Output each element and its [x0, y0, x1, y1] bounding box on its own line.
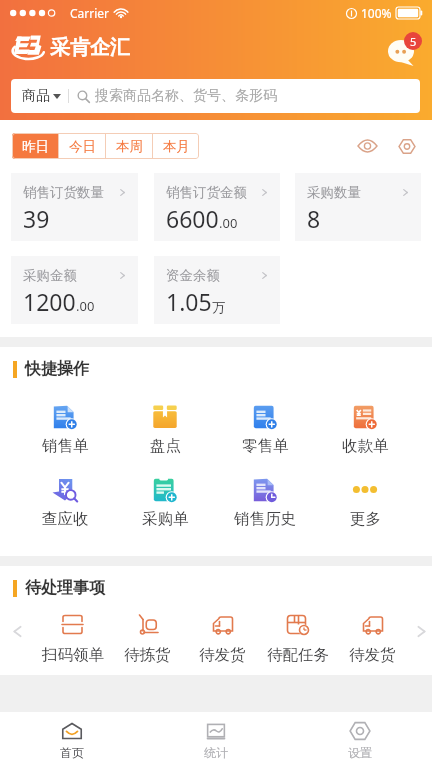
- staticText: 首页: [60, 745, 84, 760]
- button[interactable]: 扫码领单: [35, 612, 110, 665]
- button[interactable]: 采购单: [115, 477, 215, 529]
- button[interactable]: 收款单: [315, 404, 415, 456]
- button[interactable]: 销售订货金额: [154, 173, 280, 241]
- staticText: 统计: [204, 745, 228, 760]
- staticText: 快捷操作: [25, 359, 89, 379]
- staticText: 设置: [348, 745, 372, 760]
- staticText: 扫码领单: [42, 645, 104, 665]
- staticText: 待发货: [349, 645, 396, 665]
- staticText: 盘点: [150, 436, 181, 456]
- staticText: 昨日: [22, 138, 49, 155]
- button[interactable]: 待发货: [335, 612, 410, 665]
- staticText: 搜索商品名称、货号、条形码: [95, 87, 277, 105]
- button[interactable]: 本周: [106, 133, 152, 159]
- staticText: 零售单: [242, 436, 289, 456]
- button[interactable]: 查应收: [15, 477, 115, 529]
- staticText: 万: [212, 299, 225, 315]
- staticText: 采购单: [142, 509, 189, 529]
- staticText: 资金余额: [166, 267, 220, 284]
- staticText: 销售订货数量: [23, 184, 104, 201]
- staticText: 5: [410, 34, 417, 49]
- staticText: 销售单: [42, 436, 89, 456]
- button[interactable]: 商品: [11, 79, 420, 113]
- staticText: .00: [76, 297, 95, 315]
- button[interactable]: 今日: [59, 133, 105, 159]
- button[interactable]: 首页: [0, 712, 144, 768]
- button[interactable]: Messages: [388, 32, 422, 66]
- button[interactable]: 盘点: [115, 404, 215, 456]
- staticText: .00: [219, 214, 238, 232]
- staticText: 今日: [69, 138, 96, 155]
- staticText: 采购金额: [23, 267, 77, 284]
- button[interactable]: 零售单: [215, 404, 315, 456]
- button[interactable]: 待拣货: [110, 612, 185, 665]
- button[interactable]: Previous: [0, 612, 35, 662]
- button[interactable]: 采购金额: [11, 256, 138, 324]
- button[interactable]: 统计: [144, 712, 288, 768]
- staticText: 待处理事项: [25, 578, 105, 598]
- button[interactable]: 销售单: [15, 404, 115, 456]
- button[interactable]: 销售历史: [215, 477, 315, 529]
- button[interactable]: 采购数量: [295, 173, 421, 241]
- button[interactable]: Settings: [393, 132, 421, 160]
- staticText: 1.05: [166, 286, 212, 317]
- button[interactable]: Toggle visibility: [353, 132, 381, 160]
- button[interactable]: 昨日: [12, 133, 58, 159]
- button[interactable]: 本月: [153, 133, 199, 159]
- button[interactable]: 设置: [288, 712, 432, 768]
- staticText: 采肯企汇: [50, 35, 130, 60]
- staticText: 39: [23, 203, 50, 234]
- staticText: 销售订货金额: [166, 184, 247, 201]
- staticText: 收款单: [342, 436, 389, 456]
- staticText: 8: [307, 203, 321, 234]
- staticText: 本月: [163, 138, 190, 155]
- staticText: 商品: [22, 87, 50, 105]
- staticText: 待发货: [199, 645, 246, 665]
- staticText: 100%: [361, 5, 392, 21]
- button[interactable]: 待发货: [185, 612, 260, 665]
- button[interactable]: Next: [410, 612, 432, 662]
- staticText: 待拣货: [124, 645, 171, 665]
- staticText: Carrier: [70, 5, 110, 21]
- staticText: 1200: [23, 286, 76, 317]
- staticText: 采购数量: [307, 184, 361, 201]
- button[interactable]: 更多: [315, 477, 415, 529]
- staticText: 销售历史: [234, 509, 296, 529]
- button[interactable]: 资金余额: [154, 256, 280, 324]
- staticText: 查应收: [42, 509, 89, 529]
- staticText: 待配任务: [267, 645, 329, 665]
- staticText: 本周: [116, 138, 143, 155]
- staticText: 更多: [350, 509, 381, 529]
- button[interactable]: 待配任务: [260, 612, 335, 665]
- staticText: 6600: [166, 203, 219, 234]
- button[interactable]: 销售订货数量: [11, 173, 138, 241]
